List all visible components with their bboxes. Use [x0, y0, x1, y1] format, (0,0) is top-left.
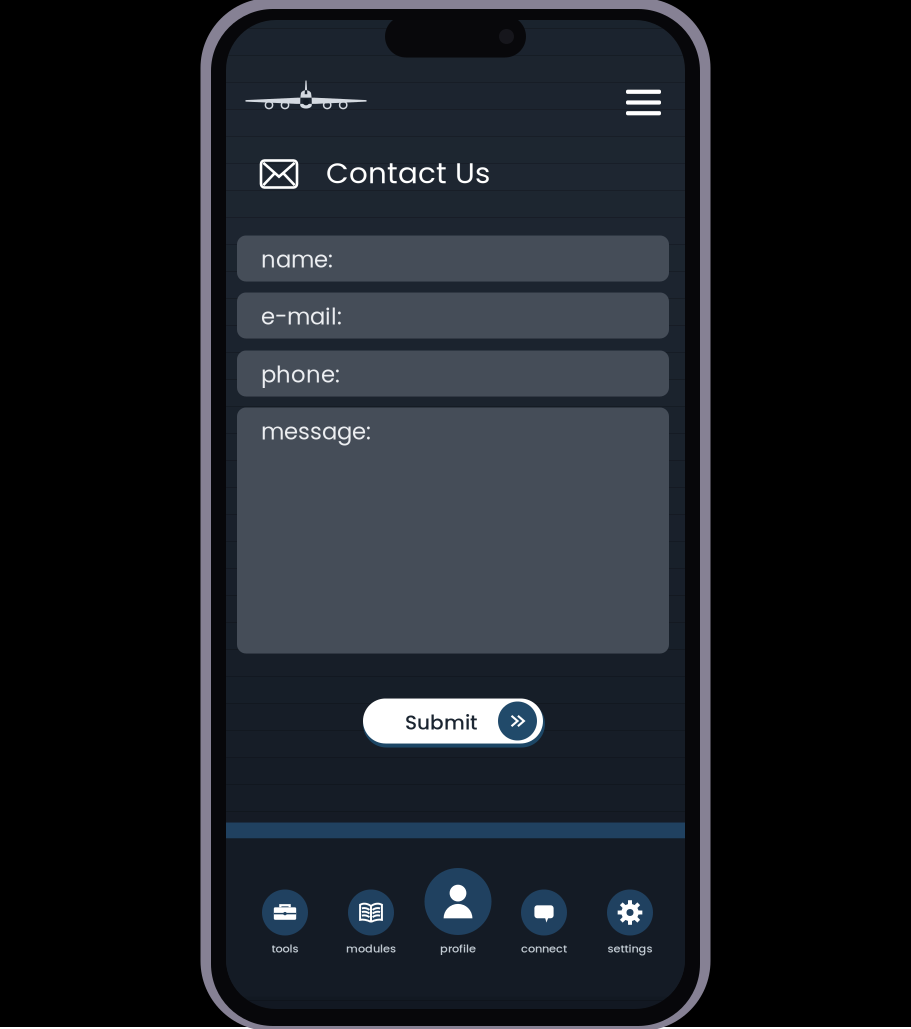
staticText: connect [521, 940, 567, 956]
staticText: profile [440, 940, 476, 956]
staticText: modules [346, 940, 396, 956]
button[interactable]: profile [415, 838, 501, 948]
button[interactable]: Menu [618, 81, 669, 123]
button[interactable]: name: [237, 235, 669, 281]
staticText: Submit [405, 708, 477, 736]
staticText: settings [607, 940, 652, 956]
button[interactable]: connect [501, 838, 587, 948]
staticText: phone: [261, 359, 340, 390]
button[interactable]: tools [242, 838, 328, 948]
staticText: message: [261, 416, 371, 447]
button[interactable]: settings [587, 838, 673, 948]
button[interactable]: e-mail: [237, 292, 669, 338]
button[interactable]: Submit [363, 697, 545, 746]
staticText: tools [271, 940, 298, 956]
button[interactable]: phone: [237, 350, 669, 396]
staticText: e-mail: [261, 301, 342, 332]
button[interactable]: message: [237, 407, 669, 653]
staticText: Contact Us [326, 152, 490, 194]
button[interactable]: modules [328, 838, 414, 948]
staticText: name: [261, 244, 333, 275]
